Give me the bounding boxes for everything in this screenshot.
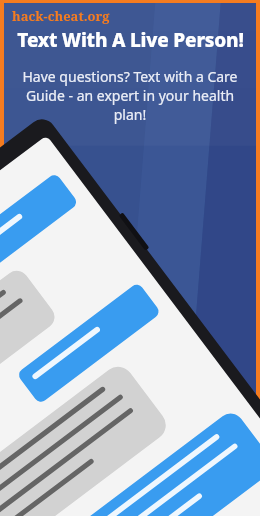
staticText: Text With A Live Person! xyxy=(17,27,244,53)
staticText: Have questions? Text with a Care Guide -… xyxy=(18,67,242,124)
button[interactable]: Chat conversation preview xyxy=(4,153,256,513)
button[interactable]: Text With A Live Person! xyxy=(10,27,250,53)
staticText: hack-cheat.org xyxy=(12,7,110,25)
